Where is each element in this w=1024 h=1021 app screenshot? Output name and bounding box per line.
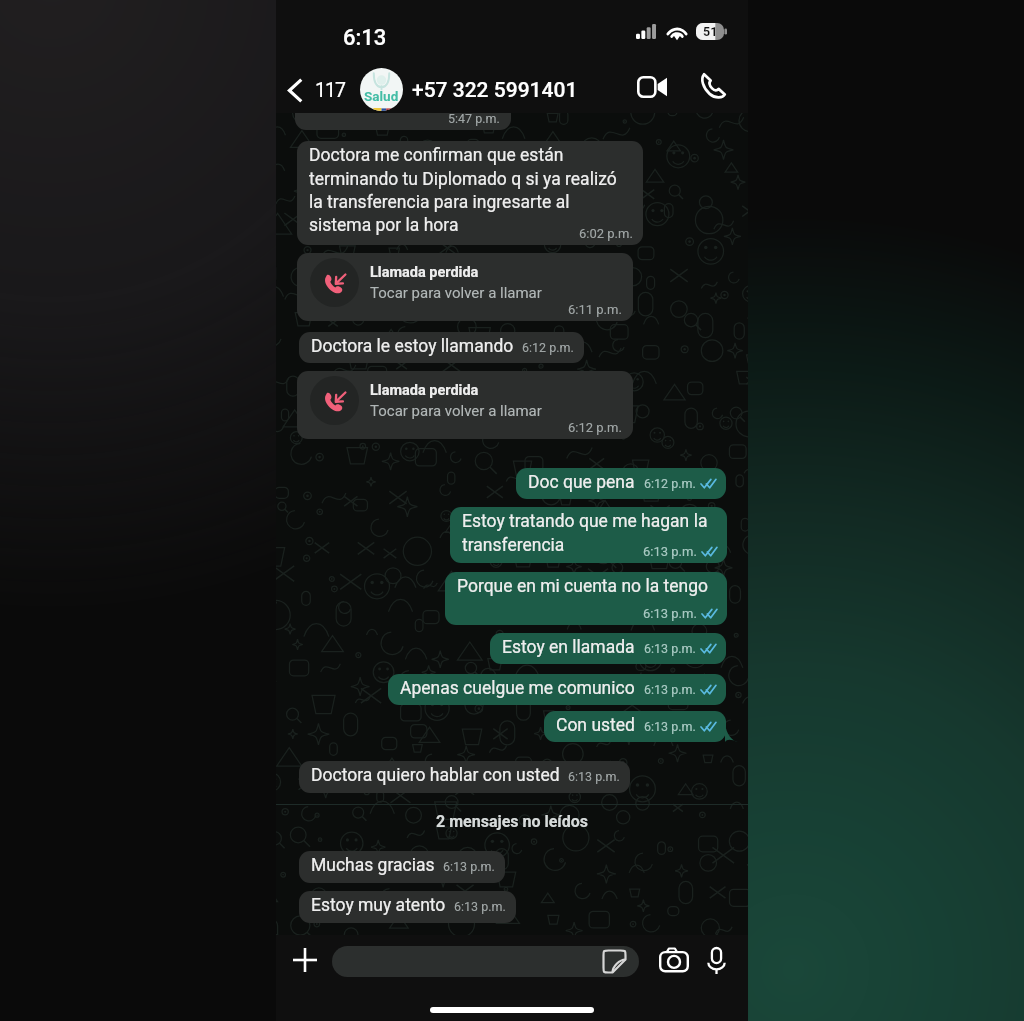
- button[interactable]: Voice call: [692, 64, 734, 106]
- button[interactable]: 117: [280, 68, 352, 112]
- staticText: +57 322 5991401: [412, 78, 578, 103]
- staticText: Doc que pena: [528, 472, 635, 493]
- staticText: 6:13 p.m.: [443, 859, 495, 874]
- staticText: 6:13 p.m.: [644, 682, 696, 697]
- staticText: 117: [315, 79, 346, 102]
- staticText: 6:12 p.m.: [644, 476, 696, 491]
- staticText: Tocar para volver a llamar: [370, 402, 542, 420]
- staticText: 6:02 p.m.: [579, 226, 633, 241]
- staticText: 6:13 p.m.: [644, 641, 696, 656]
- button[interactable]: +57 322 5991401: [412, 67, 578, 113]
- staticText: 6:13 p.m.: [454, 899, 506, 914]
- staticText: Doctora le estoy llamando: [311, 336, 514, 357]
- button[interactable]: Video call: [631, 66, 673, 108]
- button[interactable]: Llamada perdida: [297, 371, 633, 439]
- staticText: Doctora me confirman que están terminand…: [309, 145, 617, 235]
- staticText: 6:13 p.m.: [644, 719, 696, 734]
- staticText: 6:13 p.m.: [643, 544, 697, 559]
- staticText: Muchas gracias: [311, 855, 435, 876]
- staticText: Con usted: [556, 715, 635, 736]
- staticText: Porque en mi cuenta no la tengo: [457, 576, 709, 597]
- button[interactable]: Voice message: [692, 936, 740, 984]
- button[interactable]: Salud: [360, 68, 403, 111]
- staticText: 6:13 p.m.: [568, 769, 620, 784]
- staticText: 6:13: [343, 25, 387, 51]
- staticText: Estoy muy atento: [311, 895, 446, 916]
- staticText: Salud: [364, 88, 399, 104]
- staticText: Llamada perdida: [370, 382, 479, 399]
- button[interactable]: Camera: [650, 936, 698, 984]
- staticText: 2 mensajes no leídos: [276, 812, 748, 831]
- staticText: 6:12 p.m.: [568, 420, 622, 435]
- button[interactable]: [332, 946, 639, 977]
- staticText: Estoy tratando que me hagan la transfere…: [462, 511, 708, 555]
- staticText: 6:12 p.m.: [522, 340, 574, 355]
- button[interactable]: Attach: [281, 936, 329, 984]
- staticText: 5:47 p.m.: [448, 111, 500, 126]
- staticText: Estoy en llamada: [502, 637, 635, 658]
- staticText: Llamada perdida: [370, 264, 479, 281]
- staticText: Doctora quiero hablar con usted: [311, 765, 560, 786]
- staticText: Apenas cuelgue me comunico: [400, 678, 635, 699]
- staticText: 51: [703, 24, 718, 39]
- button[interactable]: Llamada perdida: [297, 253, 633, 321]
- staticText: 6:11 p.m.: [568, 302, 622, 317]
- staticText: 6:13 p.m.: [643, 606, 697, 621]
- staticText: Tocar para volver a llamar: [370, 284, 542, 302]
